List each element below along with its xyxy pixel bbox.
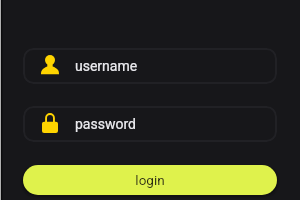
staticText: login <box>135 172 165 188</box>
staticText: username <box>75 58 138 74</box>
staticText: password <box>75 116 136 132</box>
button[interactable]: password <box>23 106 277 142</box>
button[interactable]: login <box>23 165 277 195</box>
button[interactable]: username <box>23 48 277 84</box>
